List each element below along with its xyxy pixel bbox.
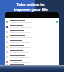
- button[interactable]: [5, 34, 59, 39]
- button[interactable]: [5, 49, 59, 54]
- button[interactable]: [5, 39, 59, 44]
- button[interactable]: [5, 24, 59, 29]
- button[interactable]: [5, 19, 59, 24]
- button[interactable]: [5, 44, 59, 49]
- button[interactable]: [5, 54, 59, 59]
- button[interactable]: [5, 64, 59, 66]
- staticText: improve your life: [14, 7, 48, 12]
- button[interactable]: [5, 29, 59, 34]
- staticText: Take action to: [16, 2, 45, 7]
- button[interactable]: [5, 59, 59, 64]
